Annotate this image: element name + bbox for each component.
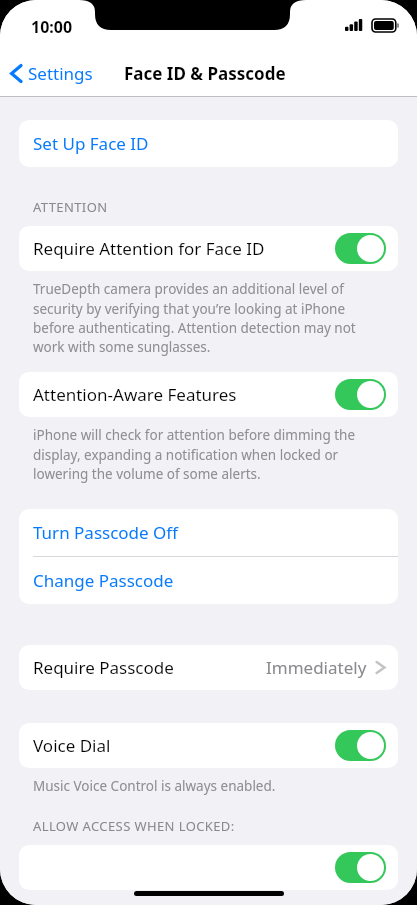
staticText: Face ID & Passcode [124,62,286,85]
staticText: 10:00 [31,16,73,38]
staticText: ATTENTION [33,198,108,216]
staticText: Require Attention for Face ID [33,237,335,260]
staticText: Turn Passcode Off [33,521,179,544]
staticText: ALLOW ACCESS WHEN LOCKED: [33,817,235,835]
button[interactable]: Voice Dial [19,723,398,768]
staticText: Music Voice Control is always enabled. [33,777,276,795]
staticText: Settings [28,62,93,85]
staticText: TrueDepth camera provides an additional … [33,280,387,356]
button[interactable]: Set Up Face ID [19,120,398,167]
button[interactable]: Require Passcode [19,645,398,690]
other: Home indicator [134,891,284,896]
button[interactable] [335,730,386,761]
staticText: Change Passcode [33,569,174,592]
button[interactable]: Attention-Aware Features [19,372,398,417]
staticText: Attention-Aware Features [33,383,335,406]
button[interactable] [335,233,386,264]
button[interactable] [335,852,386,883]
staticText: Immediately [266,656,367,679]
button[interactable] [19,845,398,890]
staticText: Require Passcode [33,656,266,679]
button[interactable]: Require Attention for Face ID [19,226,398,271]
button[interactable]: Turn Passcode Off [19,509,398,556]
button[interactable] [335,379,386,410]
button[interactable]: Change Passcode [19,557,398,604]
staticText: Set Up Face ID [33,132,149,155]
staticText: iPhone will check for attention before d… [33,426,387,483]
button[interactable]: Settings [10,62,93,85]
staticText: Voice Dial [33,734,335,757]
